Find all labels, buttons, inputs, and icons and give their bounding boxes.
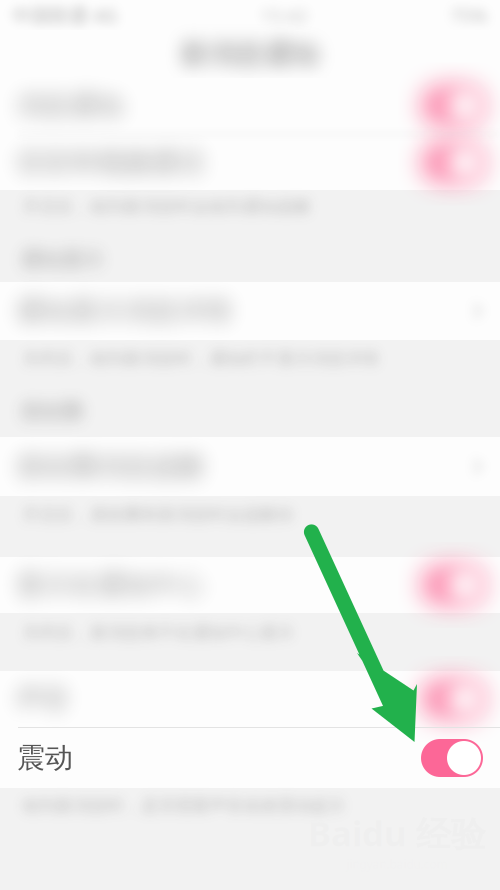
button[interactable]: 朋友圈消息提醒 xyxy=(0,437,500,495)
button[interactable]: 显示在通知中心 xyxy=(0,557,500,613)
staticText: 震动 xyxy=(17,741,73,775)
button[interactable]: 声音 xyxy=(0,671,500,727)
button[interactable]: 语音和视频通话 xyxy=(0,134,500,190)
button[interactable]: 震动 xyxy=(0,728,500,788)
button[interactable]: 消息通知 xyxy=(0,77,500,133)
button[interactable]: 通知显示消息详情 xyxy=(0,282,500,340)
